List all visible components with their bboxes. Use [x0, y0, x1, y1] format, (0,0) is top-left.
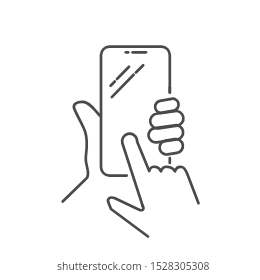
staticText: shutterstock.com · 1528305308: [57, 259, 210, 273]
